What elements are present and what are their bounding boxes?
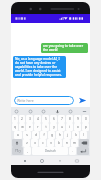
staticText: x: [34, 141, 36, 145]
button[interactable]: Sticker: [41, 109, 46, 114]
button[interactable]: g: [48, 131, 55, 139]
staticText: 0: [85, 117, 87, 121]
button[interactable]: GIF: [28, 109, 33, 114]
staticText: No, as a language model AI, I do not hav…: [15, 57, 64, 77]
staticText: m: [73, 141, 76, 145]
staticText: 5: [45, 117, 47, 121]
staticText: v: [50, 141, 52, 145]
staticText: c: [42, 141, 44, 145]
button[interactable]: h: [56, 131, 63, 139]
staticText: Deutsch: [45, 149, 56, 153]
button[interactable]: 3: [26, 115, 33, 123]
button[interactable]: Recents: [56, 157, 63, 164]
button[interactable]: More: [82, 109, 87, 114]
staticText: are you going to take over the world: [43, 44, 86, 52]
staticText: b: [58, 141, 60, 145]
staticText: 3: [29, 117, 31, 121]
button[interactable]: n: [63, 139, 70, 147]
staticText: o: [77, 125, 79, 129]
button[interactable]: Shift: [12, 139, 22, 147]
button[interactable]: y: [50, 123, 57, 131]
staticText: q: [14, 125, 16, 129]
button[interactable]: k: [72, 131, 79, 139]
staticText: l: [83, 133, 84, 137]
staticText: y: [53, 125, 55, 129]
staticText: g: [51, 133, 53, 137]
button[interactable]: 1: [12, 115, 18, 123]
button[interactable]: w: [19, 123, 25, 131]
staticText: 8: [69, 117, 71, 121]
button[interactable]: u: [58, 123, 65, 131]
button[interactable]: f: [40, 131, 47, 139]
staticText: 6: [53, 117, 55, 121]
staticText: h: [59, 133, 61, 137]
button[interactable]: Enter: [77, 147, 89, 155]
button[interactable]: Keyboard switcher: [73, 157, 80, 164]
staticText: 7: [61, 117, 63, 121]
staticText: a: [17, 133, 19, 137]
button[interactable]: t: [42, 123, 49, 131]
button[interactable]: j: [64, 131, 71, 139]
button[interactable]: .: [69, 147, 76, 155]
button[interactable]: ?1○: [12, 147, 23, 155]
button[interactable]: 5: [42, 115, 49, 123]
button[interactable]: 9: [74, 115, 81, 123]
staticText: f: [43, 133, 45, 137]
button[interactable]: 7: [58, 115, 65, 123]
button[interactable]: m: [71, 139, 78, 147]
button[interactable]: b: [55, 139, 62, 147]
button[interactable]: Back: [21, 157, 28, 164]
staticText: s: [26, 133, 28, 137]
button[interactable]: e: [26, 123, 33, 131]
staticText: t: [45, 125, 47, 129]
button[interactable]: 6: [50, 115, 57, 123]
button[interactable]: s: [23, 131, 31, 139]
staticText: .: [72, 149, 73, 153]
button[interactable]: l: [80, 131, 87, 139]
staticText: p: [85, 125, 87, 129]
staticText: u: [61, 125, 63, 129]
button[interactable]: No, as a language model AI, I do not hav…: [13, 56, 66, 78]
button[interactable]: i: [66, 123, 73, 131]
staticText: d: [35, 133, 37, 137]
button[interactable]: Write here: [14, 96, 74, 105]
staticText: k: [75, 133, 77, 137]
button[interactable]: x: [31, 139, 38, 147]
button[interactable]: 4: [34, 115, 41, 123]
staticText: n: [66, 141, 68, 145]
button[interactable]: a: [14, 131, 22, 139]
staticText: j: [67, 133, 68, 137]
button[interactable]: 0: [82, 115, 89, 123]
staticText: e: [29, 125, 31, 129]
button[interactable]: p: [82, 123, 89, 131]
staticText: z: [26, 141, 28, 145]
button[interactable]: ,: [24, 147, 31, 155]
staticText: 9: [77, 117, 79, 121]
staticText: 1: [14, 117, 16, 121]
button[interactable]: 2: [19, 115, 25, 123]
button[interactable]: o: [74, 123, 81, 131]
staticText: Write here: [17, 98, 34, 103]
staticText: i: [69, 125, 70, 129]
button[interactable]: Backspace: [79, 139, 89, 147]
button[interactable]: 8: [66, 115, 73, 123]
staticText: r: [37, 125, 39, 129]
staticText: w: [21, 125, 24, 129]
staticText: ,: [27, 149, 28, 153]
button[interactable]: Deutsch: [32, 147, 68, 155]
staticText: 4: [37, 117, 39, 121]
button[interactable]: c: [39, 139, 46, 147]
button[interactable]: Voice input: [55, 109, 60, 114]
button[interactable]: r: [34, 123, 41, 131]
button[interactable]: are you going to take over the world: [41, 43, 88, 53]
staticText: ?1○: [15, 149, 21, 153]
button[interactable]: d: [32, 131, 39, 139]
button[interactable]: Settings: [68, 109, 73, 114]
button[interactable]: Send: [77, 95, 87, 105]
button[interactable]: z: [23, 139, 30, 147]
button[interactable]: Home: [38, 157, 45, 164]
button[interactable]: q: [12, 123, 18, 131]
staticText: 2: [21, 117, 23, 121]
button[interactable]: Emoji: [14, 109, 19, 114]
button[interactable]: v: [47, 139, 54, 147]
